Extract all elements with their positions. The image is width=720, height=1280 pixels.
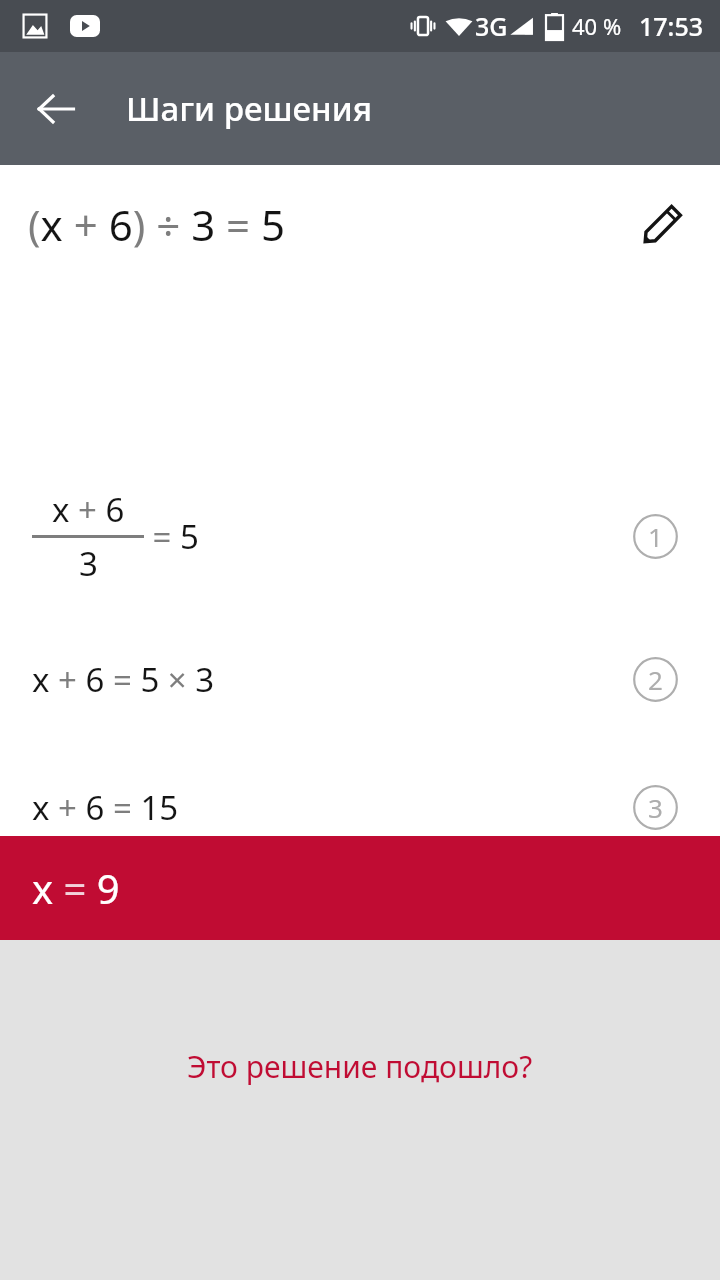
staticText: 3 [79, 541, 98, 586]
button[interactable]: Edit equation [630, 192, 694, 256]
staticText: x + 6 = 5 × 3 [32, 657, 215, 702]
button[interactable]: 2 [633, 657, 678, 702]
button[interactable]: 1 [633, 514, 678, 559]
staticText: 17:53 [639, 9, 704, 43]
button[interactable]: x = 9 [0, 836, 720, 940]
staticText: 40 % [572, 11, 622, 41]
button[interactable]: Back [22, 75, 90, 143]
button[interactable]: Это решение подошло? [187, 1046, 533, 1087]
staticText: Шаги решения [126, 86, 373, 131]
staticText: 1 [648, 519, 663, 554]
staticText: 3G [475, 9, 508, 43]
button[interactable]: 3 [633, 785, 678, 830]
staticText: Это решение подошло? [187, 1046, 533, 1087]
staticText: x = 9 [32, 861, 120, 915]
staticText: 3 [648, 790, 663, 825]
staticText: (x + 6) ÷ 3 = 5 [28, 196, 286, 253]
staticText: = 5 [144, 514, 199, 559]
staticText: x + 6 [52, 487, 125, 532]
staticText: 2 [648, 662, 663, 697]
staticText: x + 6 = 15 [32, 785, 179, 830]
staticText: 4 [648, 918, 663, 953]
staticText: x = 15 − 6 [32, 913, 179, 958]
button[interactable]: 4 [633, 913, 678, 958]
